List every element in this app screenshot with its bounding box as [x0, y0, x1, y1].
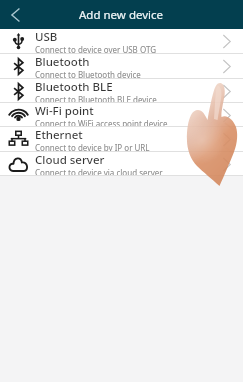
staticText: Connect to Bluetooth BLE device: [35, 94, 157, 102]
button[interactable]: Wi-Fi point: [0, 103, 243, 127]
button[interactable]: Bluetooth: [0, 54, 243, 79]
staticText: Cloud server: [35, 152, 105, 168]
staticText: Connect to device by IP or URL: [35, 142, 150, 151]
staticText: Add new device: [79, 7, 164, 23]
button[interactable]: Back: [0, 0, 30, 29]
button[interactable]: Ethernet: [0, 127, 243, 152]
staticText: Connect to Bluetooth device: [35, 69, 141, 78]
staticText: USB: [35, 29, 58, 45]
staticText: Wi-Fi point: [35, 103, 94, 119]
staticText: Connect to device over USB OTG: [35, 44, 157, 53]
button[interactable]: Bluetooth BLE: [0, 79, 243, 103]
button[interactable]: USB: [0, 29, 243, 54]
staticText: Connect to WiFi access point device: [35, 118, 168, 126]
staticText: Ethernet: [35, 127, 83, 143]
staticText: Bluetooth: [35, 54, 90, 70]
staticText: Bluetooth BLE: [35, 79, 113, 95]
staticText: Connect to device via cloud server: [35, 167, 163, 175]
button[interactable]: Cloud server: [0, 152, 243, 176]
